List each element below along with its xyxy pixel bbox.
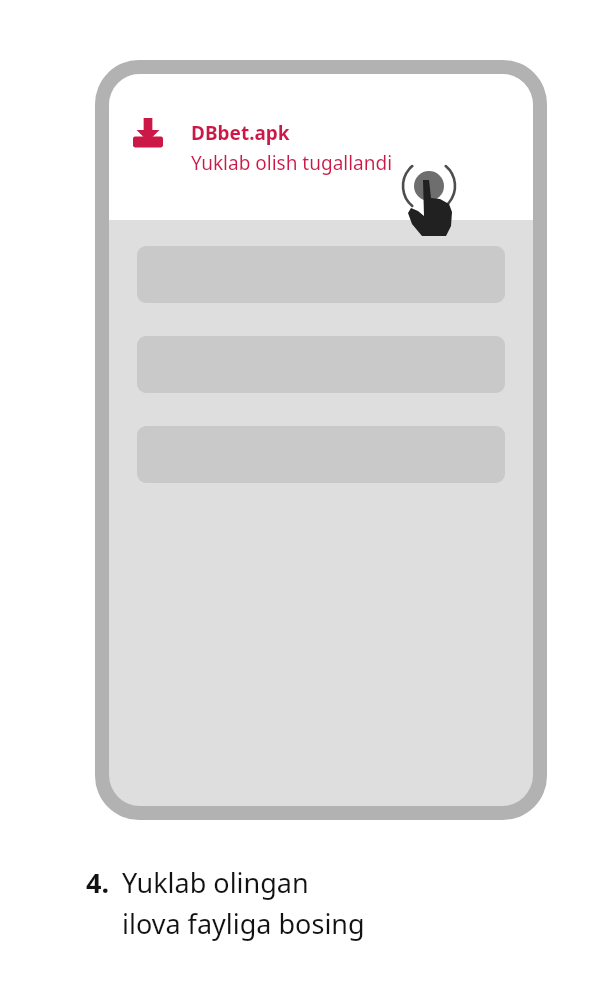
staticText: 4. bbox=[86, 864, 110, 901]
other: Tap the downloaded file bbox=[396, 166, 462, 238]
other: Download complete bbox=[133, 118, 163, 148]
staticText: ilova fayliga bosing bbox=[122, 905, 365, 942]
staticText: DBbet.apk bbox=[191, 120, 290, 146]
staticText: Yuklab olingan bbox=[122, 864, 309, 901]
staticText: Yuklab olish tugallandi bbox=[191, 150, 393, 176]
button[interactable]: Download complete bbox=[109, 74, 533, 220]
